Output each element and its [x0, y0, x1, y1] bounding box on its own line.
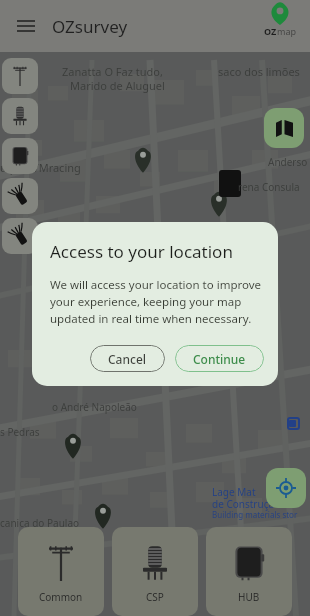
button[interactable]: HUB [206, 527, 292, 616]
staticText: de Construçã [212, 497, 275, 511]
staticText: HUB [238, 590, 260, 604]
staticText: OZ [264, 25, 277, 37]
staticText: Lage Mat [212, 485, 256, 499]
staticText: Access to your location [50, 240, 233, 263]
staticText: Building materials stor [212, 509, 298, 520]
button[interactable]: OZmap [258, 3, 302, 49]
button[interactable]: CSP tool [2, 98, 38, 134]
staticText: saco dos limões [218, 64, 300, 79]
staticText: OZsurvey [52, 15, 128, 38]
staticText: Common [39, 590, 83, 604]
staticText: Zanatta O Faz tudo, [62, 64, 163, 79]
button[interactable]: Menu [8, 8, 44, 44]
button[interactable]: Map type [264, 108, 304, 148]
staticText: uipe AVMracing [0, 160, 81, 175]
button[interactable]: Common [18, 527, 104, 616]
staticText: o André Napoleão [52, 400, 137, 414]
staticText: Cancel [108, 351, 147, 367]
button[interactable]: Cancel [90, 345, 165, 372]
staticText: CSP [146, 590, 164, 604]
staticText: Continue [193, 351, 246, 367]
staticText: Marido de Aluguel [70, 78, 165, 93]
staticText: canica do Paulao [0, 516, 80, 530]
button[interactable]: Drop cable tool [2, 218, 38, 254]
button[interactable]: Cable tool [2, 178, 38, 214]
button[interactable]: Continue [175, 345, 264, 372]
button[interactable]: My location [266, 468, 306, 508]
button[interactable]: CSP [112, 527, 198, 616]
staticText: Anderso [268, 155, 308, 169]
staticText: map [277, 25, 296, 37]
button[interactable]: HUB tool [2, 138, 38, 174]
staticText: We will access your location to improve … [50, 277, 264, 327]
button[interactable]: Pole tool [2, 58, 38, 94]
staticText: s Pedras [0, 425, 40, 439]
staticText: rena Consula [238, 180, 300, 194]
